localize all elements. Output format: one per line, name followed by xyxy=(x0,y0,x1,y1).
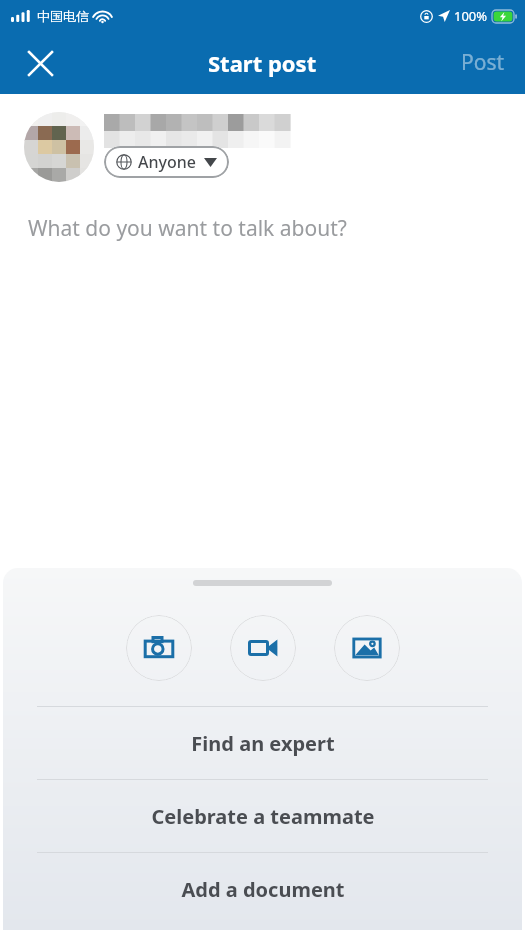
staticText: Celebrate a teammate xyxy=(151,803,375,830)
button[interactable]: Profile photo xyxy=(24,112,94,182)
button[interactable]: Record video xyxy=(230,615,296,681)
button[interactable]: Take photo xyxy=(126,615,192,681)
staticText: 100% xyxy=(454,7,488,25)
staticText: Anyone xyxy=(138,151,196,173)
button[interactable]: Close xyxy=(16,39,64,87)
button[interactable]: Add photo xyxy=(334,615,400,681)
button[interactable]: Anyone xyxy=(104,146,229,178)
staticText: Find an expert xyxy=(191,730,335,757)
button[interactable]: Post xyxy=(441,36,525,89)
staticText: Post xyxy=(461,48,505,77)
button[interactable]: Celebrate a teammate xyxy=(3,780,522,852)
staticText: Start post xyxy=(208,48,317,78)
staticText: Add a document xyxy=(181,876,345,903)
button[interactable]: Find an expert xyxy=(3,707,522,779)
staticText: What do you want to talk about? xyxy=(28,214,347,243)
staticText: 中国电信 xyxy=(37,8,89,24)
button[interactable]: Add a document xyxy=(3,853,522,925)
